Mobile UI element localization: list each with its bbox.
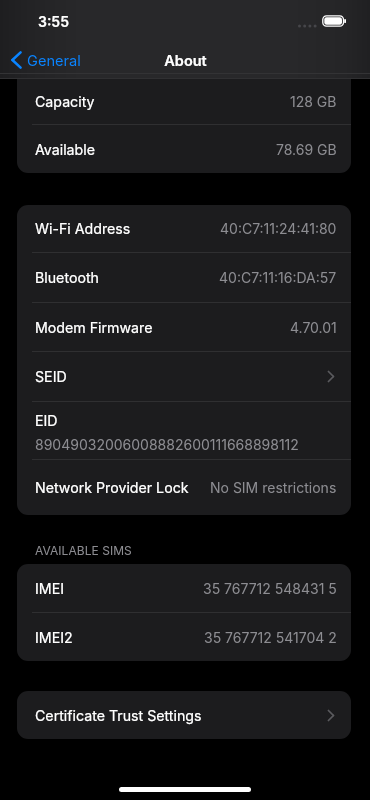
staticText: 35 767712 548431 5	[203, 580, 337, 597]
button[interactable]: Network Provider Lock	[17, 460, 351, 515]
button[interactable]: IMEI2	[17, 613, 351, 661]
staticText: EID	[35, 412, 58, 429]
staticText: SEID	[35, 368, 67, 385]
staticText: 35 767712 541704 2	[204, 629, 337, 646]
button[interactable]: Certificate Trust Settings	[17, 691, 351, 739]
staticText: 4.70.01	[290, 319, 337, 336]
button[interactable]: SEID	[17, 352, 351, 401]
button[interactable]: IMEI	[17, 564, 351, 612]
button[interactable]: Modem Firmware	[17, 303, 351, 351]
button[interactable]: EID	[17, 402, 351, 459]
staticText: IMEI	[35, 580, 64, 597]
staticText: 40:C7:11:16:DA:57	[219, 269, 337, 286]
staticText: About	[164, 52, 207, 70]
staticText: IMEI2	[35, 629, 73, 646]
staticText: General	[27, 52, 81, 70]
staticText: Modem Firmware	[35, 319, 153, 336]
staticText: Wi-Fi Address	[35, 220, 131, 237]
staticText: Capacity	[35, 93, 95, 110]
staticText: AVAILABLE SIMS	[35, 543, 132, 558]
staticText: 3:55	[38, 13, 69, 30]
button[interactable]: Available	[17, 125, 351, 173]
staticText: 89049032006008882600111668898112	[35, 436, 299, 453]
staticText: Available	[35, 141, 95, 158]
staticText: 40:C7:11:24:41:80	[220, 220, 337, 237]
button[interactable]: Bluetooth	[17, 253, 351, 302]
button[interactable]: Wi-Fi Address	[17, 205, 351, 252]
staticText: 128 GB	[290, 93, 337, 110]
staticText: Bluetooth	[35, 269, 99, 286]
button[interactable]: Capacity	[17, 79, 351, 124]
staticText: Certificate Trust Settings	[35, 707, 202, 724]
button[interactable]: General	[0, 44, 87, 78]
staticText: No SIM restrictions	[210, 479, 337, 496]
staticText: Network Provider Lock	[35, 479, 189, 496]
staticText: 78.69 GB	[276, 141, 337, 158]
